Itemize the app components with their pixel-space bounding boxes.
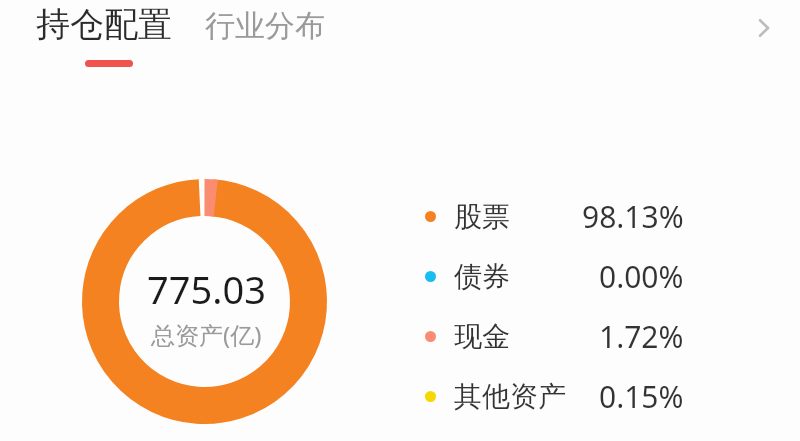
staticText: 775.03 bbox=[147, 263, 266, 315]
staticText: 98.13% bbox=[582, 196, 684, 237]
button[interactable]: 股票 bbox=[420, 186, 684, 246]
staticText: 其他资产 bbox=[454, 379, 566, 414]
button[interactable]: 持仓配置 bbox=[30, 1, 178, 48]
button[interactable]: More bbox=[744, 8, 784, 48]
button[interactable]: 债券 bbox=[420, 246, 684, 306]
staticText: 0.00% bbox=[599, 256, 684, 297]
staticText: 总资产(亿) bbox=[151, 318, 262, 351]
staticText: 股票 bbox=[454, 199, 510, 234]
staticText: 持仓配置 bbox=[36, 3, 172, 46]
staticText: 行业分布 bbox=[205, 7, 325, 45]
button[interactable]: 行业分布 bbox=[199, 5, 331, 47]
button[interactable]: 其他资产 bbox=[420, 366, 684, 426]
staticText: 债券 bbox=[454, 259, 510, 294]
staticText: 0.15% bbox=[599, 376, 684, 417]
staticText: 1.72% bbox=[599, 316, 684, 357]
button[interactable]: 现金 bbox=[420, 306, 684, 366]
staticText: 现金 bbox=[454, 319, 510, 354]
